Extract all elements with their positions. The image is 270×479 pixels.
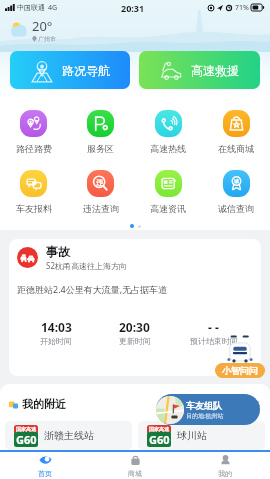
staticText: 浙赣主线站 (44, 429, 94, 442)
button[interactable]: 商城 (90, 452, 180, 479)
staticText: 在线商城 (218, 143, 254, 154)
staticText: 小智问问 (222, 365, 258, 376)
staticText: 距德胜站2.4公里有大流量,无占据车道 (17, 283, 168, 295)
staticText: - - (208, 319, 219, 335)
button[interactable]: 国家高速 (5, 421, 132, 450)
staticText: 中国联通 (17, 3, 45, 12)
staticText: 诚信查询 (218, 203, 254, 214)
staticText: 诚 (234, 178, 239, 184)
staticText: G60 (16, 432, 37, 447)
staticText: 商城 (128, 469, 142, 478)
button[interactable]: 路径路费 (0, 110, 67, 154)
staticText: 车友组队 (186, 400, 222, 411)
staticText: 14:03 (41, 319, 72, 335)
staticText: 收费站 (192, 399, 219, 410)
staticText: 20:31 (121, 2, 145, 14)
staticText: 服务区 (87, 143, 114, 154)
staticText: 球川站 (177, 429, 207, 442)
button[interactable]: 高速资讯 (134, 170, 202, 214)
button[interactable]: 首页 (0, 452, 90, 479)
staticText: 国家高速 (16, 426, 36, 432)
staticText: 4G (48, 3, 58, 13)
button[interactable]: 车友报料 (0, 170, 67, 214)
staticText: 路况导航 (62, 63, 110, 78)
staticText: 首页 (38, 469, 52, 478)
staticText: 20:30 (119, 319, 150, 335)
staticText: 我的 (218, 469, 232, 478)
button[interactable]: 违 (67, 170, 134, 214)
staticText: 路径路费 (16, 143, 52, 154)
button[interactable]: 在线商城 (202, 110, 270, 154)
button[interactable]: 小智问问 (215, 334, 265, 381)
staticText: 事故 (46, 244, 70, 259)
button[interactable]: 事故 (9, 239, 261, 376)
staticText: 车友报料 (16, 203, 52, 214)
staticText: 违法查询 (83, 203, 119, 214)
staticText: 更多 (243, 399, 261, 410)
staticText: 国家高速 (149, 426, 169, 432)
staticText: G60 (149, 432, 170, 447)
staticText: 目的地:杭州站 (186, 412, 224, 420)
staticText: 71% (235, 3, 249, 13)
button[interactable]: 车友组队 (156, 394, 260, 425)
button[interactable]: 诚 (202, 170, 270, 214)
staticText: 高速救援 (191, 63, 239, 78)
button[interactable]: 高速救援 (139, 51, 260, 89)
staticText: 高速热线 (150, 143, 186, 154)
staticText: 预计结束时间 (190, 336, 238, 346)
button[interactable]: 服务区 (67, 110, 134, 154)
staticText: 20° (32, 17, 53, 35)
staticText: 更新时间 (119, 336, 151, 346)
staticText: 高速资讯 (150, 203, 186, 214)
button[interactable]: 高速热线 (134, 110, 202, 154)
staticText: 广州市 (38, 35, 56, 43)
staticText: 我的附近 (22, 397, 66, 411)
staticText: 开始时间 (40, 336, 72, 346)
staticText: 违 (96, 178, 103, 187)
button[interactable]: 我的 (180, 452, 270, 479)
staticText: S2杭甬高速往上海方向 (46, 260, 127, 271)
button[interactable]: 路况导航 (10, 51, 130, 89)
button[interactable]: 国家高速 (138, 421, 265, 450)
